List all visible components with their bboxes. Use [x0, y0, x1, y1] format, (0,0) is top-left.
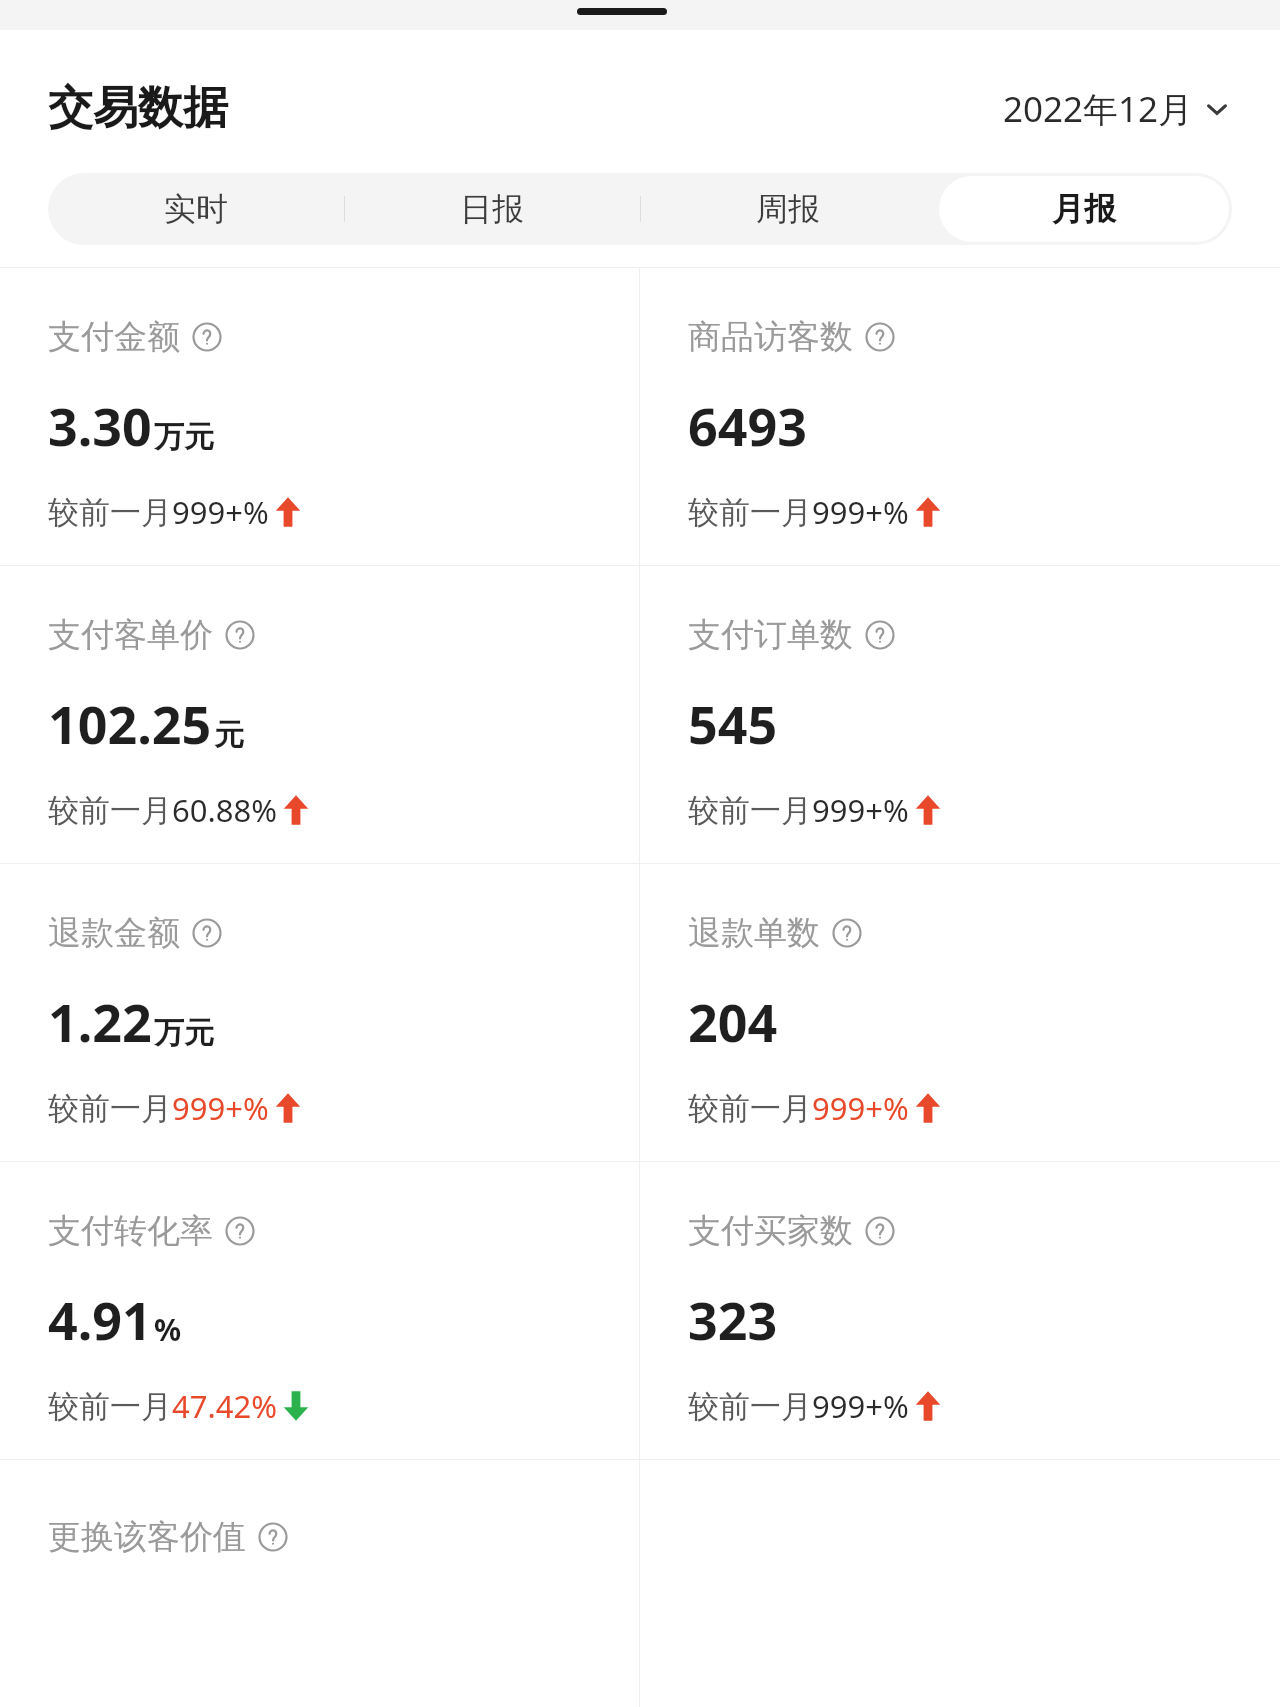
staticText: 102.25	[48, 688, 212, 759]
button[interactable]: 帮助说明	[865, 1216, 895, 1246]
staticText: 交易数据	[48, 80, 228, 137]
staticText: 退款单数	[688, 912, 820, 954]
button[interactable]: 帮助说明	[192, 322, 222, 352]
staticText: %	[154, 1309, 182, 1350]
staticText: 较前一月	[48, 1387, 172, 1426]
staticText: 323	[688, 1284, 778, 1355]
staticText: 元	[214, 716, 244, 754]
staticText: 较前一月	[48, 493, 172, 532]
staticText: 商品访客数	[688, 316, 853, 358]
staticText: 万元	[154, 1014, 214, 1052]
staticText: 更换该客价值	[48, 1516, 246, 1558]
staticText: 3.30	[48, 390, 152, 461]
button[interactable]: 帮助说明	[865, 620, 895, 650]
staticText: 月报	[1052, 189, 1116, 229]
staticText: 6493	[688, 390, 807, 461]
button[interactable]: 支付订单数	[640, 566, 1280, 863]
button[interactable]: 退款金额	[0, 864, 639, 1161]
staticText: 实时	[164, 189, 228, 229]
staticText: 日报	[460, 189, 524, 229]
staticText: 60.88%	[172, 789, 277, 831]
button[interactable]: 帮助说明	[258, 1522, 288, 1552]
button[interactable]: 帮助说明	[225, 620, 255, 650]
button[interactable]: 周报	[643, 176, 933, 242]
staticText: 较前一月	[688, 493, 812, 532]
button[interactable]: 实时	[51, 176, 341, 242]
button[interactable]: 2022年12月	[999, 81, 1232, 137]
staticText: 支付客单价	[48, 614, 213, 656]
staticText: 较前一月	[688, 1089, 812, 1128]
staticText: 退款金额	[48, 912, 180, 954]
button[interactable]: 商品访客数	[640, 268, 1280, 565]
button[interactable]: 帮助说明	[865, 322, 895, 352]
staticText: 999+%	[172, 1087, 269, 1129]
staticText: 999+%	[812, 491, 909, 533]
staticText: 支付金额	[48, 316, 180, 358]
staticText: 999+%	[812, 1385, 909, 1427]
staticText: 较前一月	[48, 1089, 172, 1128]
button[interactable]: 月报	[939, 176, 1229, 242]
button[interactable]: 帮助说明	[225, 1216, 255, 1246]
button[interactable]: 支付转化率	[0, 1162, 639, 1459]
button[interactable]: 帮助说明	[192, 918, 222, 948]
staticText: 999+%	[812, 1087, 909, 1129]
staticText: 999+%	[812, 789, 909, 831]
button[interactable]: 支付金额	[0, 268, 639, 565]
staticText: 1.22	[48, 986, 152, 1057]
staticText: 支付买家数	[688, 1210, 853, 1252]
staticText: 较前一月	[688, 791, 812, 830]
staticText: 999+%	[172, 491, 269, 533]
button[interactable]: 帮助说明	[832, 918, 862, 948]
staticText: 2022年12月	[1003, 85, 1194, 133]
staticText: 204	[688, 986, 778, 1057]
staticText: 545	[688, 688, 778, 759]
staticText: 4.91	[48, 1284, 152, 1355]
staticText: 支付转化率	[48, 1210, 213, 1252]
staticText: 较前一月	[48, 791, 172, 830]
staticText: 较前一月	[688, 1387, 812, 1426]
button[interactable]: 支付客单价	[0, 566, 639, 863]
button[interactable]: 退款单数	[640, 864, 1280, 1161]
button[interactable]: 日报	[347, 176, 637, 242]
staticText: 47.42%	[172, 1385, 277, 1427]
staticText: 支付订单数	[688, 614, 853, 656]
button[interactable]: 支付买家数	[640, 1162, 1280, 1459]
staticText: 周报	[756, 189, 820, 229]
staticText: 万元	[154, 418, 214, 456]
